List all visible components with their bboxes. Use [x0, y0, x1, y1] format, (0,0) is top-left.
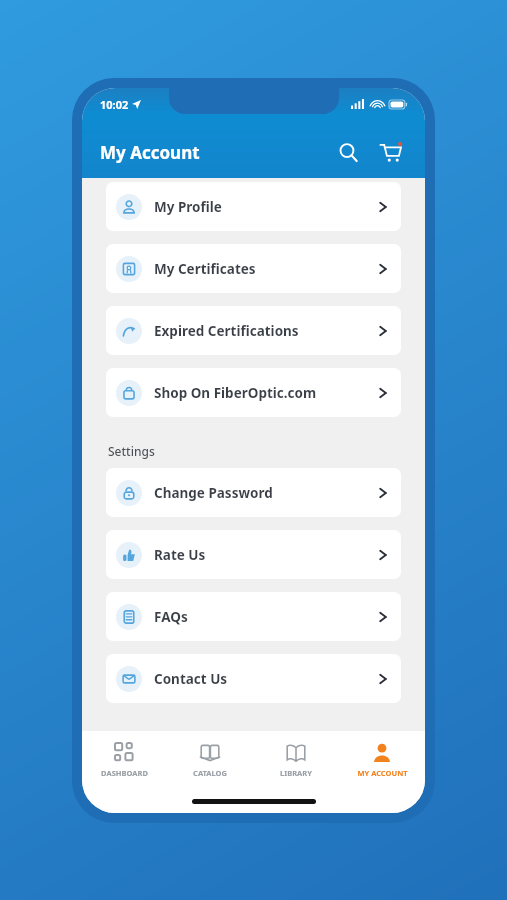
staticText: 10:02 — [100, 97, 129, 112]
staticText: My Profile — [154, 198, 222, 216]
staticText: Change Password — [154, 484, 273, 502]
button[interactable]: Cart — [373, 135, 407, 169]
button[interactable]: DASHBOARD — [82, 731, 167, 789]
staticText: LIBRARY — [280, 768, 312, 778]
staticText: My Certificates — [154, 260, 256, 278]
button[interactable]: LIBRARY — [253, 731, 339, 789]
button[interactable]: Search — [331, 135, 365, 169]
staticText: My Account — [100, 141, 200, 164]
button[interactable]: Shop On FiberOptic.com — [106, 368, 401, 417]
staticText: DASHBOARD — [101, 768, 148, 778]
staticText: MY ACCOUNT — [357, 768, 408, 778]
button[interactable]: Rate Us — [106, 530, 401, 579]
button[interactable]: FAQs — [106, 592, 401, 641]
staticText: Rate Us — [154, 546, 206, 564]
button[interactable]: My Profile — [106, 182, 401, 231]
button[interactable]: CATALOG — [167, 731, 253, 789]
staticText: Settings — [108, 443, 155, 459]
button[interactable]: Contact Us — [106, 654, 401, 703]
button[interactable]: Change Password — [106, 468, 401, 517]
button[interactable]: MY ACCOUNT — [339, 731, 425, 789]
staticText: Expired Certifications — [154, 322, 299, 340]
staticText: Shop On FiberOptic.com — [154, 384, 317, 402]
button[interactable]: Expired Certifications — [106, 306, 401, 355]
button[interactable]: My Certificates — [106, 244, 401, 293]
staticText: Contact Us — [154, 670, 228, 688]
staticText: FAQs — [154, 608, 188, 626]
staticText: CATALOG — [193, 768, 227, 778]
